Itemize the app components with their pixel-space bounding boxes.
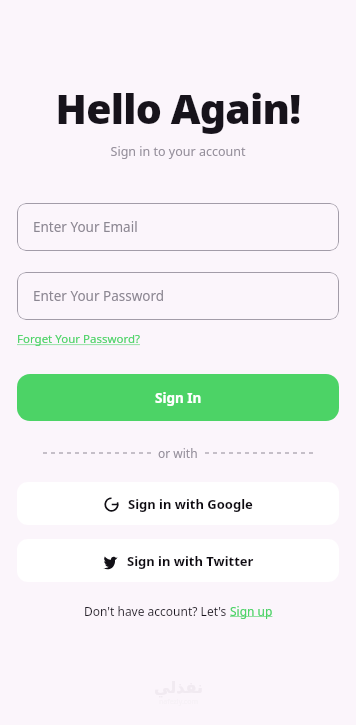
staticText: Sign In [155, 389, 202, 407]
button[interactable]: Sign up [230, 603, 273, 619]
staticText: Sign in with Twitter [127, 552, 254, 570]
button[interactable]: Sign in with Twitter [17, 539, 339, 582]
other: Sign in with Google [104, 497, 119, 512]
staticText: or with [158, 445, 198, 461]
button[interactable]: Enter Your Password [17, 272, 339, 320]
staticText: Forget Your Password? [17, 331, 141, 347]
staticText: Enter Your Email [33, 218, 138, 236]
button[interactable]: Enter Your Email [17, 203, 339, 251]
staticText: نفذلي [154, 678, 203, 697]
staticText: Enter Your Password [33, 287, 165, 305]
other: Sign in with Twitter [103, 554, 118, 569]
button[interactable]: Sign In [17, 374, 339, 421]
staticText: Hello Again! [0, 80, 356, 136]
staticText: Don't have account? Let's [84, 603, 230, 619]
staticText: Sign in with Google [128, 495, 253, 513]
button[interactable]: Forget Your Password? [17, 331, 141, 347]
button[interactable]: Sign in with Google [17, 482, 339, 525]
staticText: Sign in to your account [0, 143, 356, 160]
staticText: Sign up [230, 603, 273, 619]
